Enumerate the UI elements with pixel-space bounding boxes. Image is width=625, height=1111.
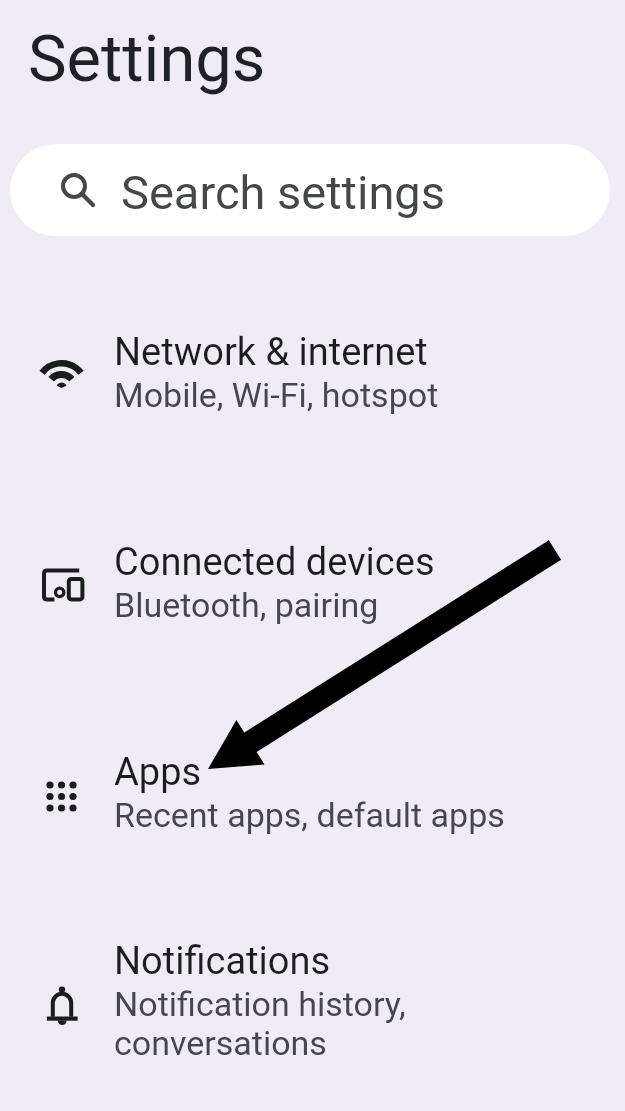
button[interactable]: Search settings	[10, 144, 610, 236]
staticText: Mobile, Wi-Fi, hotspot	[114, 375, 439, 415]
staticText: Network & internet	[114, 330, 428, 375]
staticText: Search settings	[121, 165, 445, 220]
staticText: Connected devices	[114, 540, 435, 585]
staticText: Apps	[114, 750, 202, 795]
staticText: Notifications	[114, 939, 331, 984]
staticText: Bluetooth, pairing	[114, 585, 379, 625]
staticText: Recent apps, default apps	[114, 795, 505, 835]
staticText: Settings	[28, 21, 266, 97]
button[interactable]: Apps	[0, 687, 625, 897]
button[interactable]: Network & internet	[0, 267, 625, 477]
button[interactable]: Connected devices	[0, 477, 625, 687]
button[interactable]: Notifications	[0, 897, 625, 1105]
staticText: Notification history, conversations	[114, 984, 406, 1063]
